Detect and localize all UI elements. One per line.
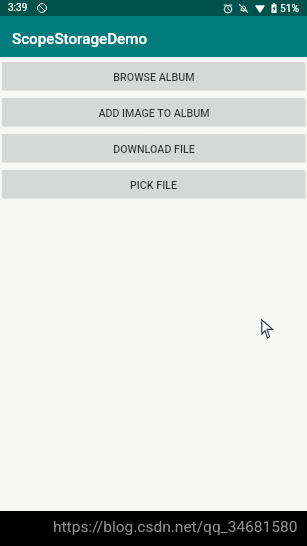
staticText: BROWSE ALBUM (113, 71, 195, 84)
staticText: 3:39 (8, 2, 28, 14)
button[interactable]: BROWSE ALBUM (2, 62, 305, 90)
other: Alarm set (224, 4, 232, 13)
button[interactable]: DOWNLOAD FILE (2, 134, 305, 162)
other: Wi-Fi (255, 4, 265, 13)
staticText: 51% (280, 2, 300, 14)
staticText: PICK FILE (130, 179, 177, 192)
staticText: ScopeStorageDemo (12, 30, 148, 48)
staticText: ADD IMAGE TO ALBUM (98, 107, 210, 120)
staticText: https://blog.csdn.net/qq_34681580 (53, 518, 298, 536)
button[interactable]: PICK FILE (2, 170, 305, 198)
staticText: DOWNLOAD FILE (113, 143, 195, 156)
other: Ringer silent (239, 4, 248, 13)
other: Do not disturb (37, 3, 47, 13)
button[interactable]: ADD IMAGE TO ALBUM (2, 98, 305, 126)
